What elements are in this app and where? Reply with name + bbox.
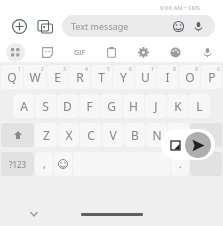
button[interactable]: Gallery [34, 15, 56, 37]
button[interactable]: S [35, 94, 56, 118]
staticText: 5 [107, 66, 110, 73]
staticText: B [131, 127, 139, 143]
button[interactable]: B [124, 123, 145, 147]
button[interactable]: Z [35, 123, 57, 147]
staticText: , [43, 157, 46, 171]
button[interactable]: Enter [190, 152, 222, 176]
staticText: P [208, 69, 216, 85]
button[interactable]: D [57, 94, 78, 118]
button[interactable]: Backspace [190, 123, 222, 147]
button[interactable]: L [189, 94, 210, 118]
button[interactable]: Clipboard [102, 43, 121, 62]
staticText: 3 [63, 66, 66, 73]
button[interactable]: Text message [62, 15, 215, 37]
button[interactable]: ?123 [1, 152, 34, 176]
staticText: A [20, 98, 28, 114]
staticText: L [196, 98, 203, 114]
button[interactable]: Stickers [38, 43, 57, 62]
staticText: 7 [151, 66, 154, 73]
button[interactable]: O [179, 65, 200, 89]
staticText: D [63, 98, 72, 114]
button[interactable]: X [58, 123, 79, 147]
button[interactable]: Resize [165, 135, 185, 155]
button[interactable]: I [157, 65, 178, 89]
button[interactable]: P [201, 65, 222, 89]
button[interactable]: V [102, 123, 123, 147]
button[interactable]: Emoji [170, 18, 186, 34]
staticText: W [29, 69, 41, 85]
button[interactable]: Send [185, 132, 211, 158]
button[interactable]: Themes [166, 43, 185, 62]
button[interactable]: GIF [70, 43, 89, 62]
button[interactable]: . [171, 152, 189, 176]
button[interactable]: U [135, 65, 156, 89]
button[interactable]: J [145, 94, 166, 118]
staticText: X [65, 127, 73, 143]
staticText: E [54, 69, 61, 85]
staticText: Y [120, 69, 127, 85]
staticText: I [165, 69, 170, 85]
button[interactable]: K [167, 94, 188, 118]
staticText: H [129, 98, 138, 114]
staticText: O [185, 69, 195, 85]
staticText: C [87, 127, 95, 143]
button[interactable]: Add attachment [8, 15, 30, 37]
staticText: V [109, 127, 117, 143]
staticText: 1 [18, 66, 21, 73]
staticText: R [76, 69, 84, 85]
staticText: GIF [74, 48, 86, 58]
button[interactable]: A [13, 94, 34, 118]
staticText: N [152, 127, 162, 143]
button[interactable]: Y [113, 65, 134, 89]
staticText: 4 [85, 66, 88, 73]
button[interactable]: W [24, 65, 46, 89]
staticText: . [179, 157, 182, 171]
button[interactable]: R [69, 65, 90, 89]
staticText: 6 [129, 66, 132, 73]
staticText: Text message [71, 20, 170, 32]
staticText: F [86, 98, 93, 114]
button[interactable]: Voice input [190, 18, 206, 34]
staticText: G [107, 98, 116, 114]
staticText: Z [43, 127, 50, 143]
button[interactable]: M [168, 123, 189, 147]
staticText: U [141, 69, 150, 85]
staticText: 8 [173, 66, 176, 73]
staticText: 9 [195, 66, 198, 73]
button[interactable]: , [35, 152, 53, 176]
staticText: ?123 [9, 159, 27, 170]
button[interactable]: Emoji [54, 152, 72, 176]
button[interactable]: G [101, 94, 122, 118]
button[interactable]: Hide keyboard [26, 206, 42, 222]
button[interactable]: N [146, 123, 167, 147]
button[interactable]: F [79, 94, 100, 118]
button[interactable]: Voice typing [198, 43, 217, 62]
staticText: T [98, 69, 105, 85]
staticText: S [42, 98, 49, 114]
button[interactable]: E [47, 65, 68, 89]
staticText: Q [7, 69, 17, 85]
button[interactable]: Settings [134, 43, 153, 62]
button[interactable]: Shift [1, 123, 34, 147]
staticText: J [154, 98, 158, 114]
button[interactable]: T [91, 65, 112, 89]
button[interactable]: Apps [6, 43, 25, 62]
button[interactable]: H [123, 94, 144, 118]
staticText: 2 [41, 66, 44, 73]
staticText: 0 [217, 66, 220, 73]
staticText: M [173, 127, 184, 143]
button[interactable]: Q [1, 65, 23, 89]
staticText: K [174, 98, 182, 114]
button[interactable]: C [80, 123, 101, 147]
staticText: 9:06 AM • SMS [160, 4, 201, 12]
